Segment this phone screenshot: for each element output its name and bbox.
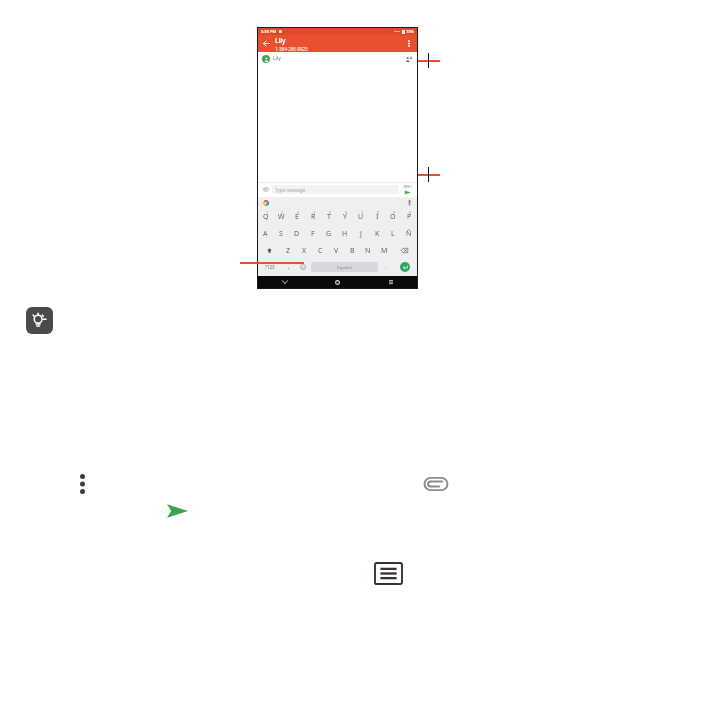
button[interactable]: A <box>258 225 273 242</box>
staticText: C <box>318 246 323 256</box>
staticText: I <box>376 212 379 222</box>
button[interactable]: H <box>337 225 353 242</box>
button[interactable]: ?123 <box>258 259 282 275</box>
button[interactable]: J <box>353 225 369 242</box>
staticText: D <box>294 229 300 239</box>
staticText: 3 <box>297 210 300 215</box>
button[interactable]: Attach <box>261 185 270 194</box>
staticText: Lily <box>273 55 281 62</box>
staticText: A <box>263 229 268 239</box>
staticText: R <box>311 212 316 222</box>
button[interactable]: S <box>273 225 289 242</box>
staticText: ?123 <box>265 264 275 270</box>
button[interactable]: B <box>344 242 360 259</box>
button[interactable]: N <box>360 242 376 259</box>
staticText: L <box>391 229 395 239</box>
button[interactable]: U <box>353 208 369 225</box>
button[interactable]: Home <box>311 276 364 288</box>
button[interactable]: K <box>369 225 385 242</box>
staticText: O <box>390 212 396 222</box>
button[interactable]: G <box>321 225 337 242</box>
button[interactable]: P <box>401 208 417 225</box>
staticText: Español <box>337 265 352 270</box>
staticText: 4 <box>313 210 316 215</box>
staticText: 5 <box>329 210 332 215</box>
button[interactable]: Back <box>258 35 275 52</box>
button[interactable]: More options <box>400 35 417 52</box>
button[interactable]: Keyboard <box>374 562 402 584</box>
staticText: 9 <box>393 210 396 215</box>
staticText: T <box>327 212 331 222</box>
staticText: 2 <box>281 210 284 215</box>
staticText: 1 <box>266 210 269 215</box>
button[interactable]: Attach <box>422 470 450 498</box>
staticText: K <box>375 229 380 239</box>
button[interactable]: Send <box>401 182 414 197</box>
button[interactable]: Add recipient <box>403 54 413 64</box>
staticText: E <box>295 212 299 222</box>
button[interactable]: , <box>282 259 296 275</box>
button[interactable]: Q <box>258 208 273 225</box>
staticText: X <box>302 246 307 256</box>
staticText: 8 <box>377 210 380 215</box>
staticText: V <box>334 246 339 256</box>
button[interactable]: R <box>305 208 321 225</box>
button[interactable]: T <box>321 208 337 225</box>
button[interactable]: Google <box>262 199 269 206</box>
staticText: N <box>365 246 371 256</box>
staticText: B <box>350 246 355 256</box>
button[interactable]: More options <box>72 468 92 500</box>
staticText: 6:55 PM <box>261 29 277 34</box>
button[interactable]: Tip <box>26 307 53 334</box>
button[interactable]: Voice input <box>406 199 413 206</box>
staticText: , <box>288 263 290 271</box>
button[interactable]: W <box>273 208 289 225</box>
button[interactable]: Ñ <box>401 225 417 242</box>
button[interactable]: O <box>385 208 401 225</box>
staticText: Q <box>263 212 269 222</box>
staticText: F <box>311 229 315 239</box>
button[interactable]: . <box>379 259 393 275</box>
button[interactable]: Z <box>280 242 296 259</box>
staticText: 7 <box>361 210 364 215</box>
staticText: 0 <box>409 210 412 215</box>
button[interactable]: D <box>289 225 305 242</box>
staticText: U <box>358 212 364 222</box>
button[interactable]: Recents <box>364 276 417 288</box>
button[interactable]: Hide keyboard <box>258 276 311 288</box>
staticText: SMS/1 <box>403 185 412 189</box>
button[interactable]: Enter <box>393 259 417 275</box>
button[interactable]: Send <box>164 498 190 524</box>
button[interactable]: Shift <box>258 242 280 259</box>
staticText: H <box>342 229 348 239</box>
button[interactable]: C <box>312 242 328 259</box>
staticText: Type message <box>275 187 306 193</box>
button[interactable]: Español <box>311 262 378 272</box>
button[interactable]: Y <box>337 208 353 225</box>
staticText: Ñ <box>406 229 412 239</box>
button[interactable]: Emoji <box>296 259 310 275</box>
button[interactable]: X <box>296 242 312 259</box>
staticText: M <box>381 246 388 256</box>
staticText: Y <box>343 212 347 222</box>
staticText: P <box>407 212 412 222</box>
button[interactable]: V <box>328 242 344 259</box>
staticText: 73% <box>406 29 414 34</box>
staticText: J <box>360 229 362 239</box>
button[interactable]: I <box>369 208 385 225</box>
staticText: 1-384-206-8825 <box>275 46 308 52</box>
button[interactable]: E <box>289 208 305 225</box>
button[interactable]: Type message <box>272 185 399 194</box>
staticText: Lily <box>275 36 286 45</box>
button[interactable]: Backspace <box>392 242 417 259</box>
staticText: S <box>279 229 283 239</box>
staticText: W <box>278 212 285 222</box>
button[interactable]: F <box>305 225 321 242</box>
staticText: . <box>385 263 387 271</box>
staticText: 6 <box>345 210 348 215</box>
staticText: G <box>326 229 332 239</box>
button[interactable]: L <box>385 225 401 242</box>
button[interactable]: M <box>376 242 392 259</box>
staticText: Z <box>286 246 291 256</box>
